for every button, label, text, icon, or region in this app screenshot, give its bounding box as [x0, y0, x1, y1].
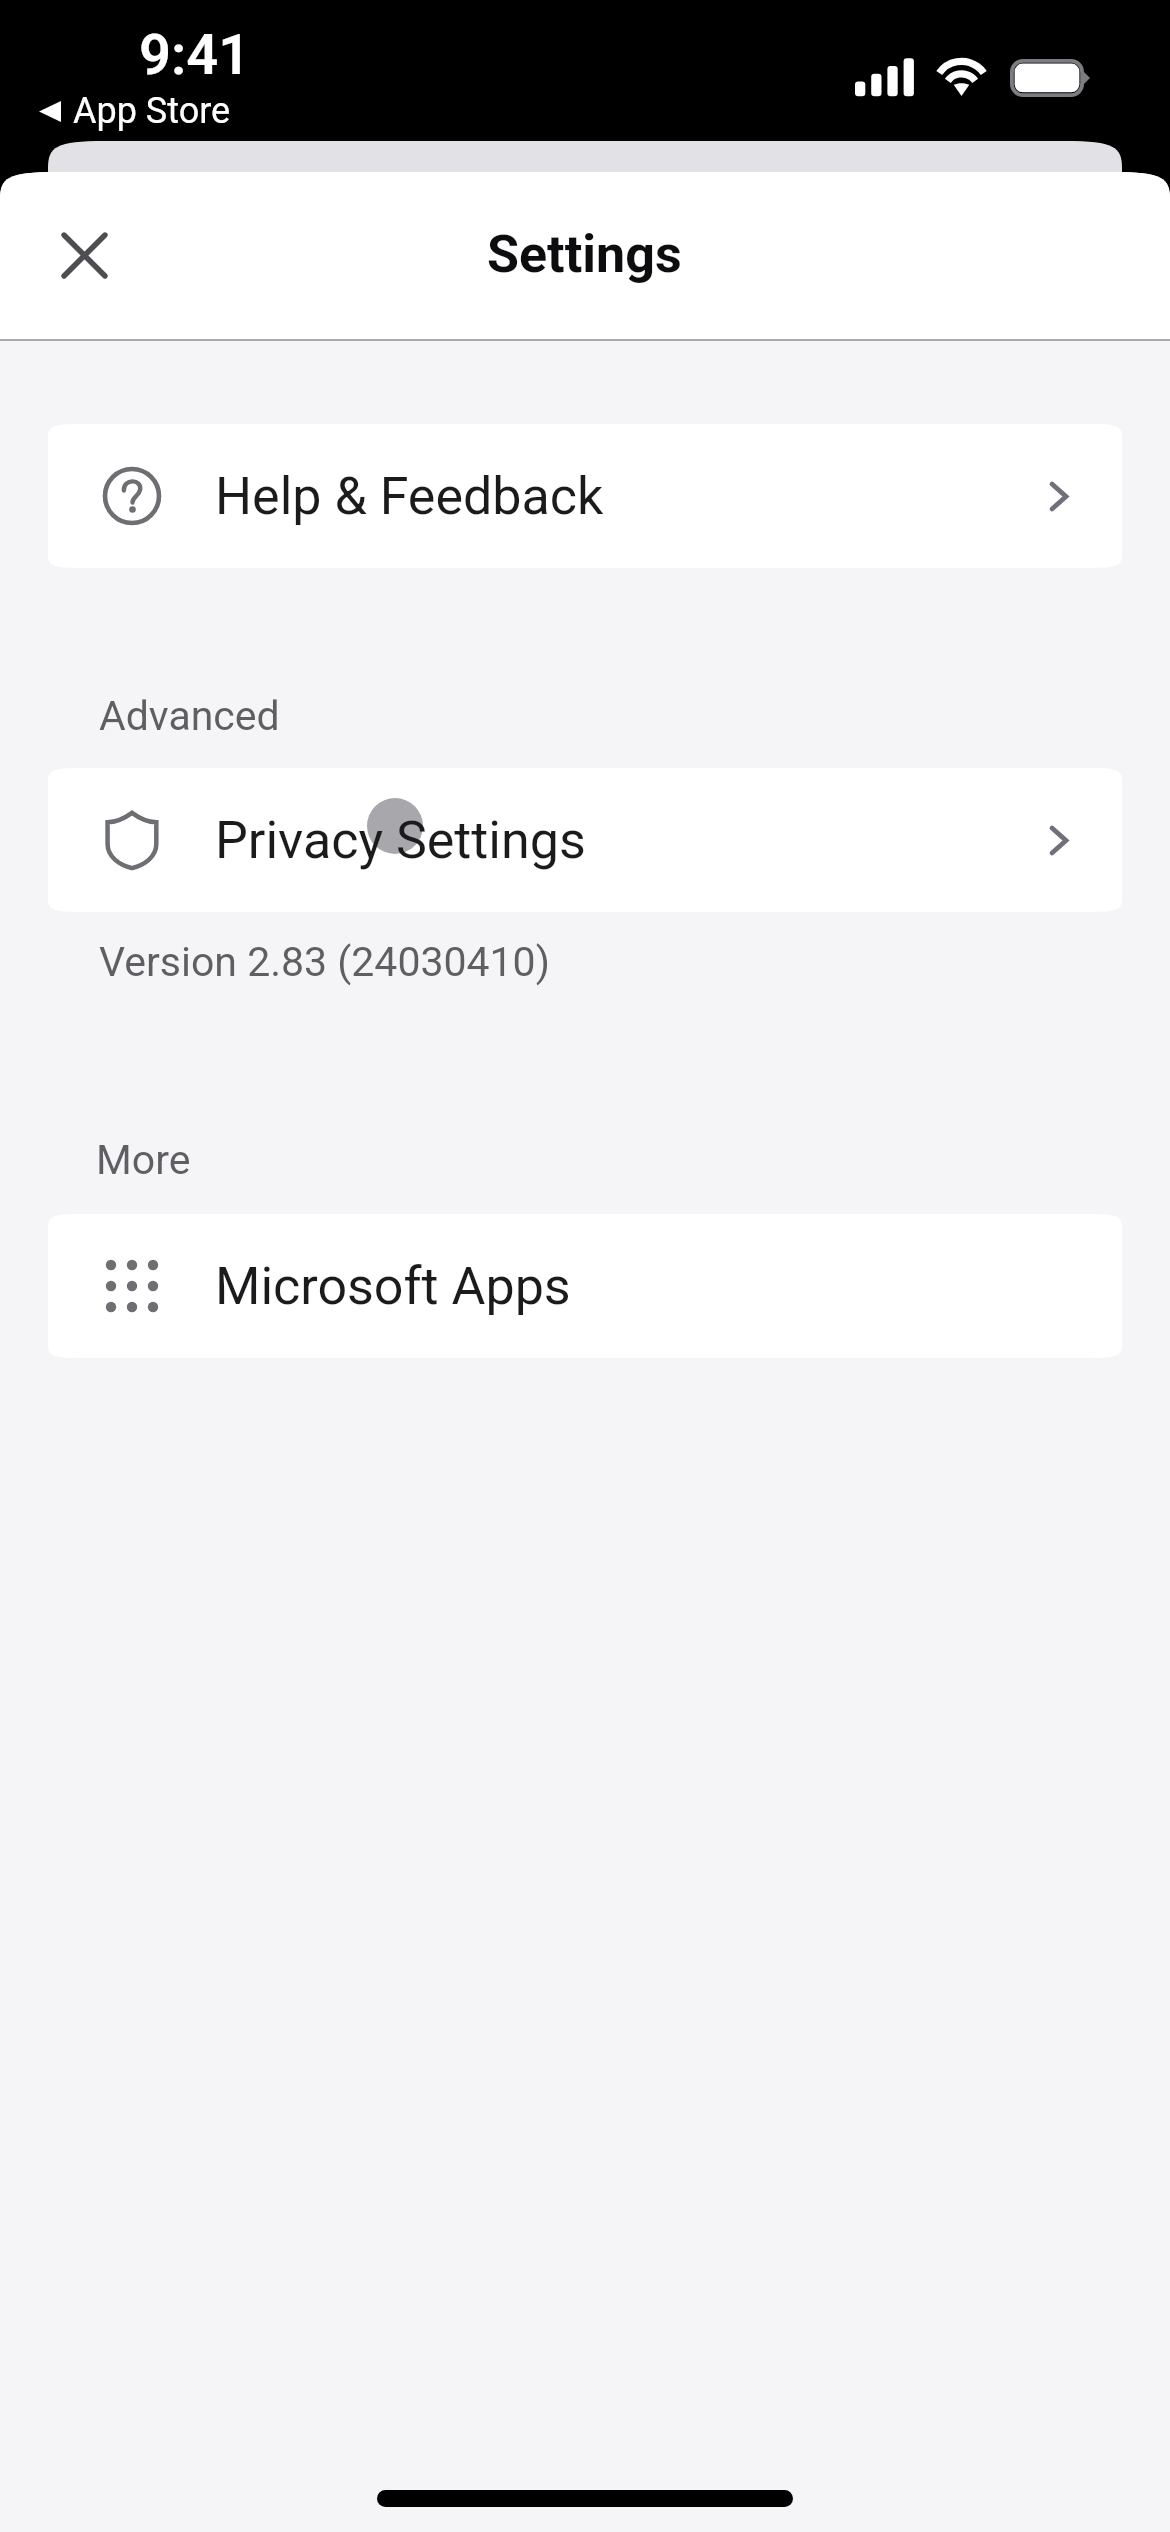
staticText: Advanced [99, 692, 280, 740]
button[interactable]: Privacy Settings [48, 768, 1122, 912]
staticText: App Store [73, 90, 231, 132]
staticText: More [96, 1136, 191, 1184]
staticText: Settings [487, 224, 682, 285]
button[interactable]: Microsoft Apps [48, 1214, 1122, 1358]
staticText: Help & Feedback [215, 466, 604, 527]
button[interactable]: Help & Feedback [48, 424, 1122, 568]
button[interactable]: Close [37, 208, 132, 303]
staticText: Privacy Settings [215, 810, 586, 871]
staticText: Version 2.83 (24030410) [99, 938, 550, 986]
staticText: Microsoft Apps [215, 1256, 571, 1317]
staticText: 9:41 [139, 22, 251, 88]
